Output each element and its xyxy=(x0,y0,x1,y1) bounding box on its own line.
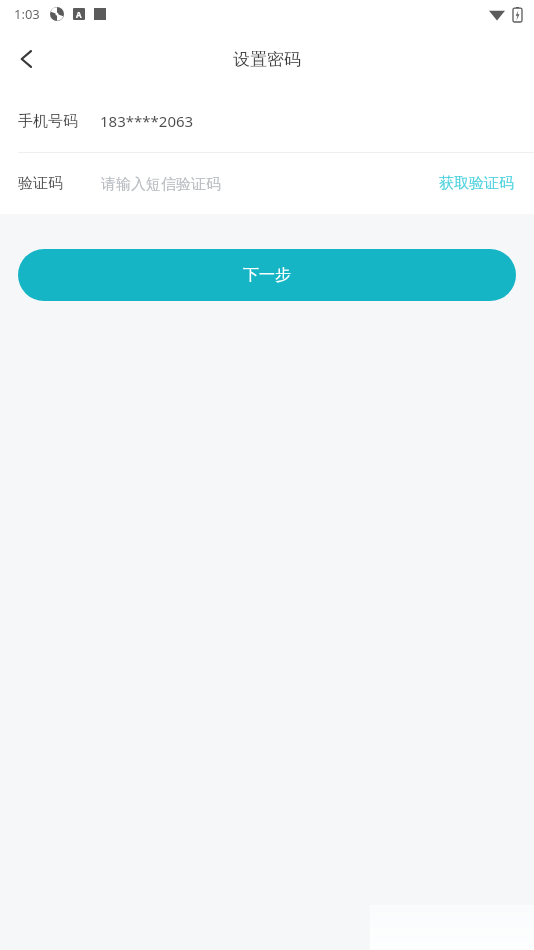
staticText: A xyxy=(76,9,82,20)
staticText: 设置密码 xyxy=(233,49,301,70)
button[interactable]: Back xyxy=(0,32,54,86)
staticText: 1:03 xyxy=(14,5,40,23)
staticText: 获取验证码 xyxy=(439,174,514,193)
staticText: 手机号码 xyxy=(18,112,78,131)
button[interactable]: 下一步 xyxy=(18,249,516,301)
staticText: 183****2063 xyxy=(100,111,194,131)
button[interactable]: 手机号码 xyxy=(0,90,534,152)
staticText: 验证码 xyxy=(18,174,63,193)
button[interactable]: 获取验证码 xyxy=(437,166,516,201)
staticText: 下一步 xyxy=(243,265,291,285)
staticText: 请输入短信验证码 xyxy=(101,175,221,194)
button[interactable]: 请输入短信验证码 xyxy=(101,164,437,204)
